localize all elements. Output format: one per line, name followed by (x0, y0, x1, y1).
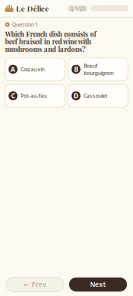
button[interactable]: ← Prev (6, 277, 64, 291)
staticText: A (10, 65, 15, 74)
button[interactable]: Next (69, 277, 127, 291)
staticText: Coq au vin (20, 66, 44, 73)
staticText: Question 1 (12, 21, 38, 28)
staticText: C (11, 91, 15, 100)
staticText: B (74, 65, 78, 74)
staticText: Which French dish consists of (5, 30, 96, 37)
staticText: Boeuf bourguignon (83, 62, 113, 76)
staticText: mushrooms and lardons? (5, 45, 85, 53)
button[interactable]: B (68, 58, 128, 81)
staticText: Q 1/20 (69, 5, 85, 12)
staticText: Cassoulet (83, 92, 107, 99)
button[interactable]: D (68, 84, 128, 107)
staticText: beef braised in red wine with (5, 38, 91, 45)
staticText: ← Prev (23, 280, 46, 289)
staticText: Pot-au-feu (20, 92, 46, 99)
button[interactable]: A (5, 58, 65, 81)
staticText: Le Délice (16, 3, 49, 13)
button[interactable]: C (5, 84, 65, 107)
staticText: D (73, 91, 78, 100)
staticText: Next (90, 280, 106, 289)
